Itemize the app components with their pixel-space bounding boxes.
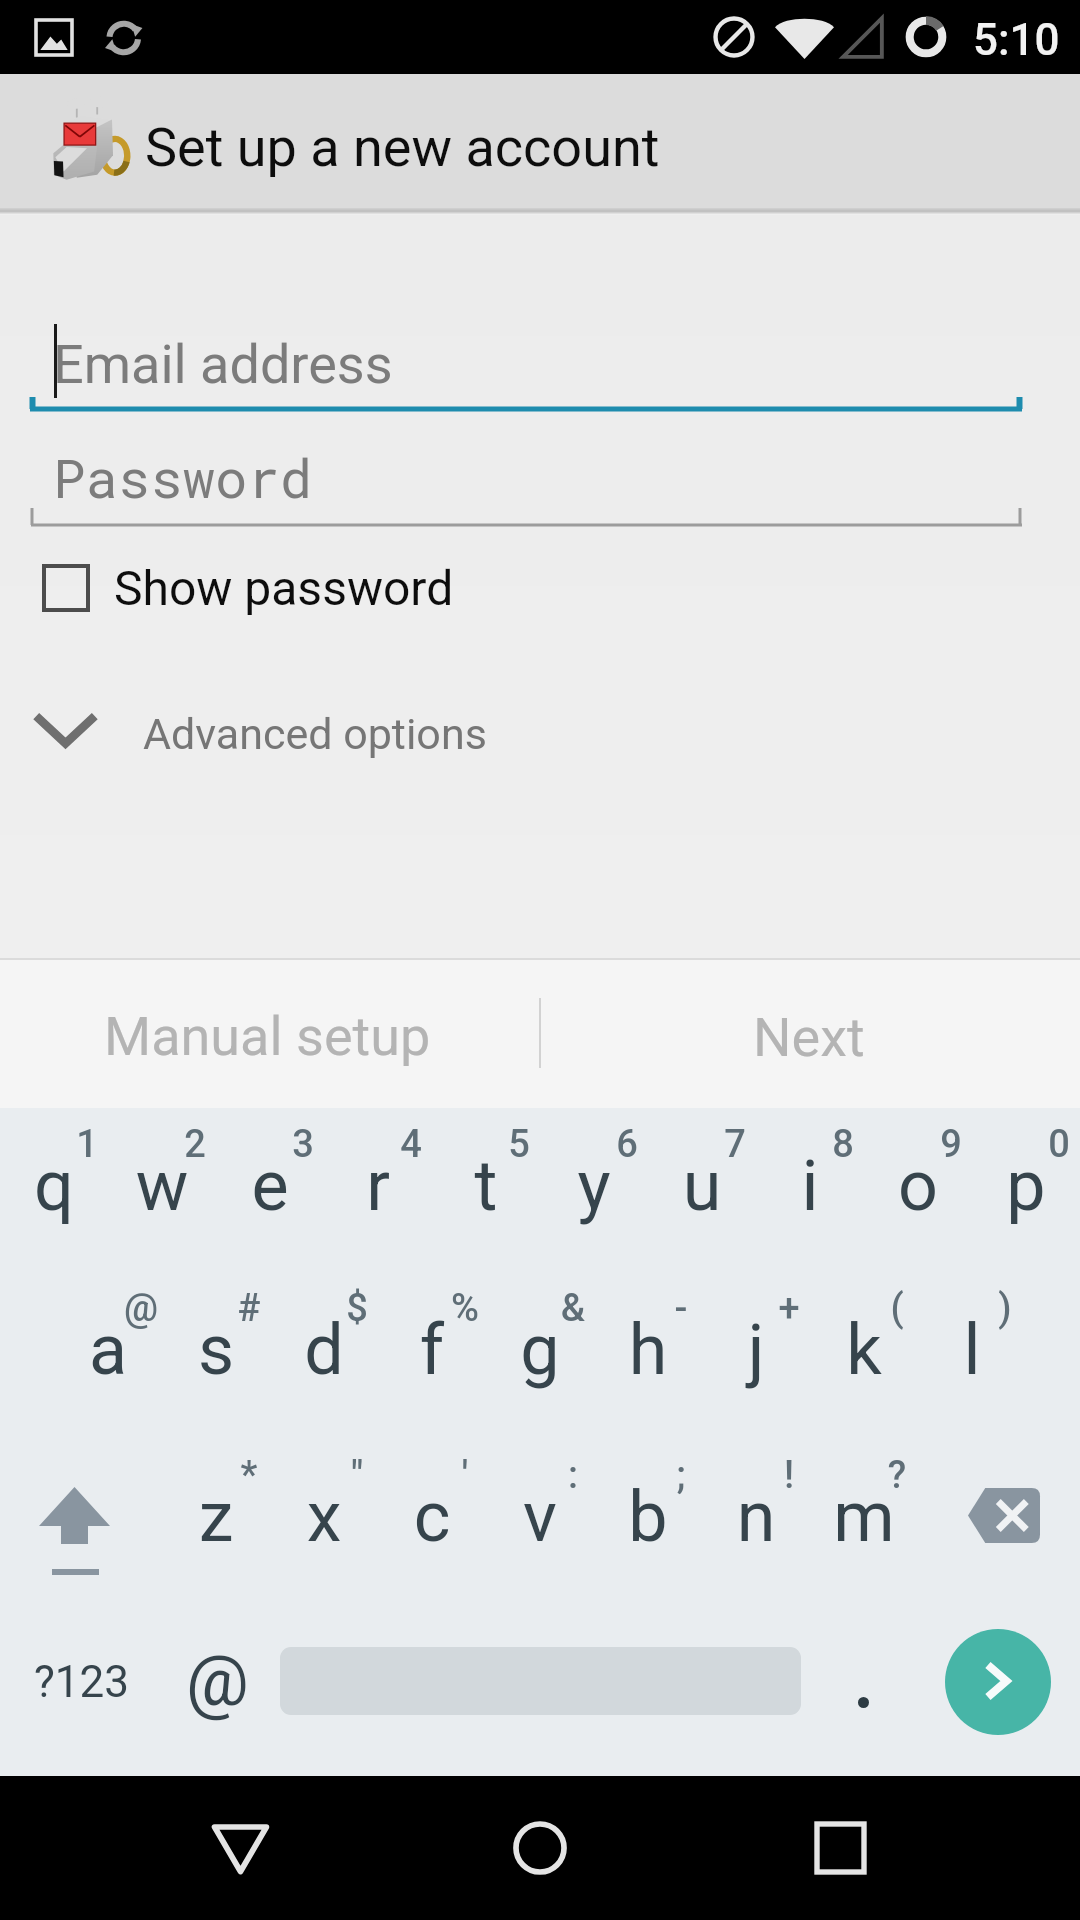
staticText: ) [951, 1286, 1059, 1331]
staticText: k [810, 1309, 918, 1391]
staticText: + [735, 1286, 843, 1331]
staticText: w [108, 1145, 216, 1227]
staticText: - [627, 1286, 735, 1331]
button[interactable] [810, 1644, 918, 1776]
staticText: ( [843, 1286, 951, 1331]
button[interactable] [270, 1436, 378, 1600]
staticText: 6 [573, 1122, 681, 1167]
staticText: Show password [114, 560, 454, 616]
staticText: 4 [357, 1122, 465, 1167]
staticText: Password [53, 441, 313, 512]
button[interactable]: Set up a new account [0, 74, 1080, 210]
staticText: h [594, 1309, 702, 1391]
button[interactable] [216, 1105, 324, 1269]
button[interactable] [0, 1105, 108, 1269]
staticText: * [195, 1453, 303, 1498]
staticText: 8 [789, 1122, 897, 1167]
staticText: % [411, 1286, 519, 1331]
button[interactable] [810, 1436, 918, 1600]
staticText: l [918, 1309, 1026, 1391]
button[interactable] [0, 545, 1080, 631]
button[interactable] [162, 1269, 270, 1433]
staticText: 2 [141, 1122, 249, 1167]
staticText: Email address [53, 333, 393, 396]
staticText: & [519, 1286, 627, 1331]
staticText: z [162, 1476, 270, 1558]
staticText: @ [186, 1640, 249, 1722]
button[interactable] [540, 1105, 648, 1269]
staticText: 7 [681, 1122, 789, 1167]
staticText: $ [303, 1286, 411, 1331]
button[interactable] [378, 1269, 486, 1433]
staticText: a [54, 1309, 162, 1391]
button[interactable] [702, 1436, 810, 1600]
staticText: Advanced options [143, 709, 487, 759]
staticText: " [303, 1453, 411, 1498]
staticText: 9 [897, 1122, 1005, 1167]
staticText: u [648, 1145, 756, 1227]
staticText: ' [411, 1453, 519, 1498]
staticText: Set up a new account [145, 116, 660, 179]
button[interactable] [756, 1105, 864, 1269]
button[interactable] [648, 1105, 756, 1269]
staticText: ?123 [34, 1656, 129, 1708]
button[interactable]: Shift [0, 1480, 162, 1644]
button[interactable] [0, 1644, 162, 1776]
button[interactable] [432, 1105, 540, 1269]
staticText: t [432, 1145, 540, 1227]
button[interactable] [594, 1269, 702, 1433]
staticText: g [486, 1309, 594, 1391]
staticText: r [324, 1145, 432, 1227]
button[interactable] [270, 1269, 378, 1433]
button[interactable] [108, 1105, 216, 1269]
staticText: c [378, 1476, 486, 1558]
button[interactable] [0, 690, 1080, 778]
button[interactable]: Back [150, 1776, 330, 1920]
staticText: Manual setup [104, 1005, 431, 1068]
staticText: ! [735, 1453, 843, 1498]
staticText: j [702, 1309, 810, 1391]
staticText: p [972, 1145, 1080, 1227]
button[interactable]: Space [270, 1644, 810, 1776]
button[interactable] [594, 1436, 702, 1600]
button[interactable] [378, 1436, 486, 1600]
button[interactable] [864, 1105, 972, 1269]
staticText: x [270, 1476, 378, 1558]
staticText: 5:10 [973, 14, 1060, 66]
button[interactable] [810, 1269, 918, 1433]
staticText: 1 [33, 1122, 141, 1167]
button[interactable] [54, 1269, 162, 1433]
staticText: @ [87, 1286, 195, 1331]
button[interactable] [486, 1269, 594, 1433]
staticText: m [810, 1476, 918, 1558]
button[interactable] [162, 1644, 270, 1776]
button[interactable] [972, 1105, 1080, 1269]
button[interactable] [0, 960, 540, 1108]
staticText: n [702, 1476, 810, 1558]
button[interactable] [702, 1269, 810, 1433]
staticText: i [756, 1145, 864, 1227]
staticText: s [162, 1309, 270, 1391]
staticText: f [378, 1309, 486, 1391]
staticText: : [519, 1453, 627, 1498]
staticText: 0 [1005, 1122, 1080, 1167]
button[interactable]: Enter [918, 1644, 1080, 1776]
button[interactable] [0, 300, 1080, 412]
staticText: ; [627, 1453, 735, 1498]
staticText: o [864, 1145, 972, 1227]
button[interactable] [540, 960, 1080, 1108]
button[interactable] [918, 1269, 1026, 1433]
staticText: ? [843, 1453, 951, 1498]
button[interactable]: Home [450, 1776, 630, 1920]
staticText: Next [753, 1006, 865, 1069]
staticText: 3 [249, 1122, 357, 1167]
staticText: q [0, 1145, 108, 1227]
button[interactable]: Backspace [918, 1480, 1080, 1644]
staticText: 5 [465, 1122, 573, 1167]
button[interactable] [162, 1436, 270, 1600]
button[interactable] [324, 1105, 432, 1269]
button[interactable]: Recents [750, 1776, 930, 1920]
button[interactable] [486, 1436, 594, 1600]
button[interactable] [0, 425, 1080, 525]
staticText: b [594, 1476, 702, 1558]
